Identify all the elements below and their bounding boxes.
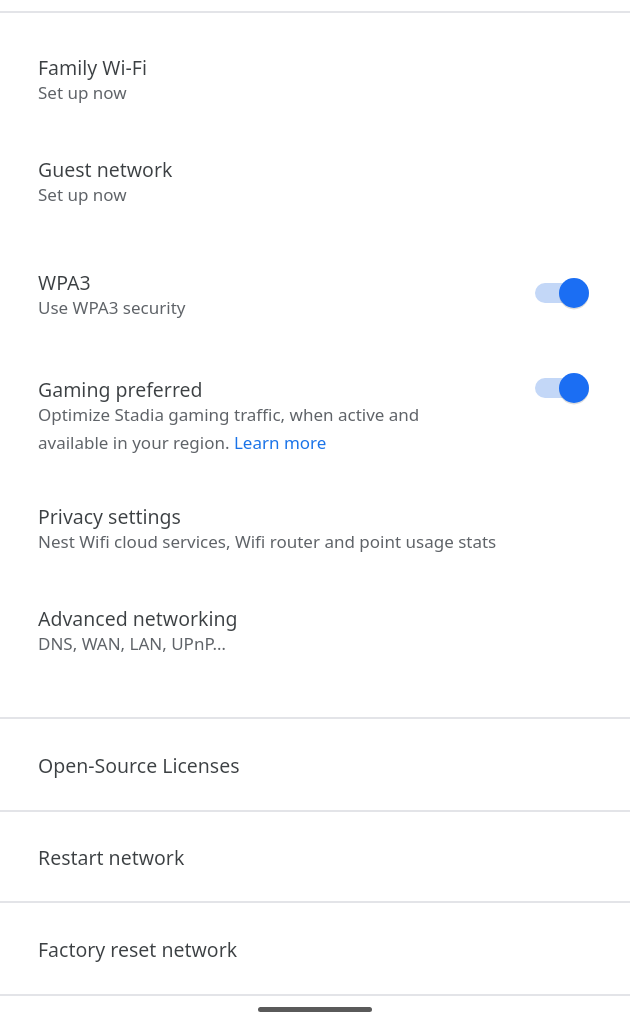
- staticText: Restart network: [38, 844, 185, 871]
- button[interactable]: Gaming preferred: [0, 362, 630, 474]
- button[interactable]: Advanced networking: [0, 591, 630, 671]
- staticText: Nest Wifi cloud services, Wifi router an…: [38, 530, 497, 553]
- button[interactable]: Restart network: [0, 812, 630, 902]
- button[interactable]: WPA3 security toggle: [528, 275, 592, 311]
- staticText: Privacy settings: [38, 503, 181, 530]
- staticText: Set up now: [38, 183, 127, 206]
- staticText: Guest network: [38, 156, 173, 183]
- staticText: Optimize Stadia gaming traffic, when act…: [38, 403, 458, 454]
- staticText: Use WPA3 security: [38, 296, 186, 319]
- button[interactable]: Gaming preferred toggle: [528, 370, 592, 406]
- staticText: DNS, WAN, LAN, UPnP…: [38, 632, 226, 655]
- button[interactable]: Factory reset network: [0, 903, 630, 995]
- button[interactable]: WPA3: [0, 255, 630, 335]
- button[interactable]: Open-Source Licenses: [0, 719, 630, 811]
- button[interactable]: Family Wi-Fi: [0, 40, 630, 120]
- staticText: Family Wi-Fi: [38, 54, 147, 81]
- staticText: Advanced networking: [38, 605, 238, 632]
- staticText: Gaming preferred: [38, 376, 203, 403]
- staticText: Set up now: [38, 81, 127, 104]
- button[interactable]: Privacy settings: [0, 489, 630, 569]
- staticText: WPA3: [38, 269, 91, 296]
- staticText: Open-Source Licenses: [38, 752, 240, 779]
- button[interactable]: Guest network: [0, 142, 630, 222]
- staticText: Factory reset network: [38, 936, 238, 963]
